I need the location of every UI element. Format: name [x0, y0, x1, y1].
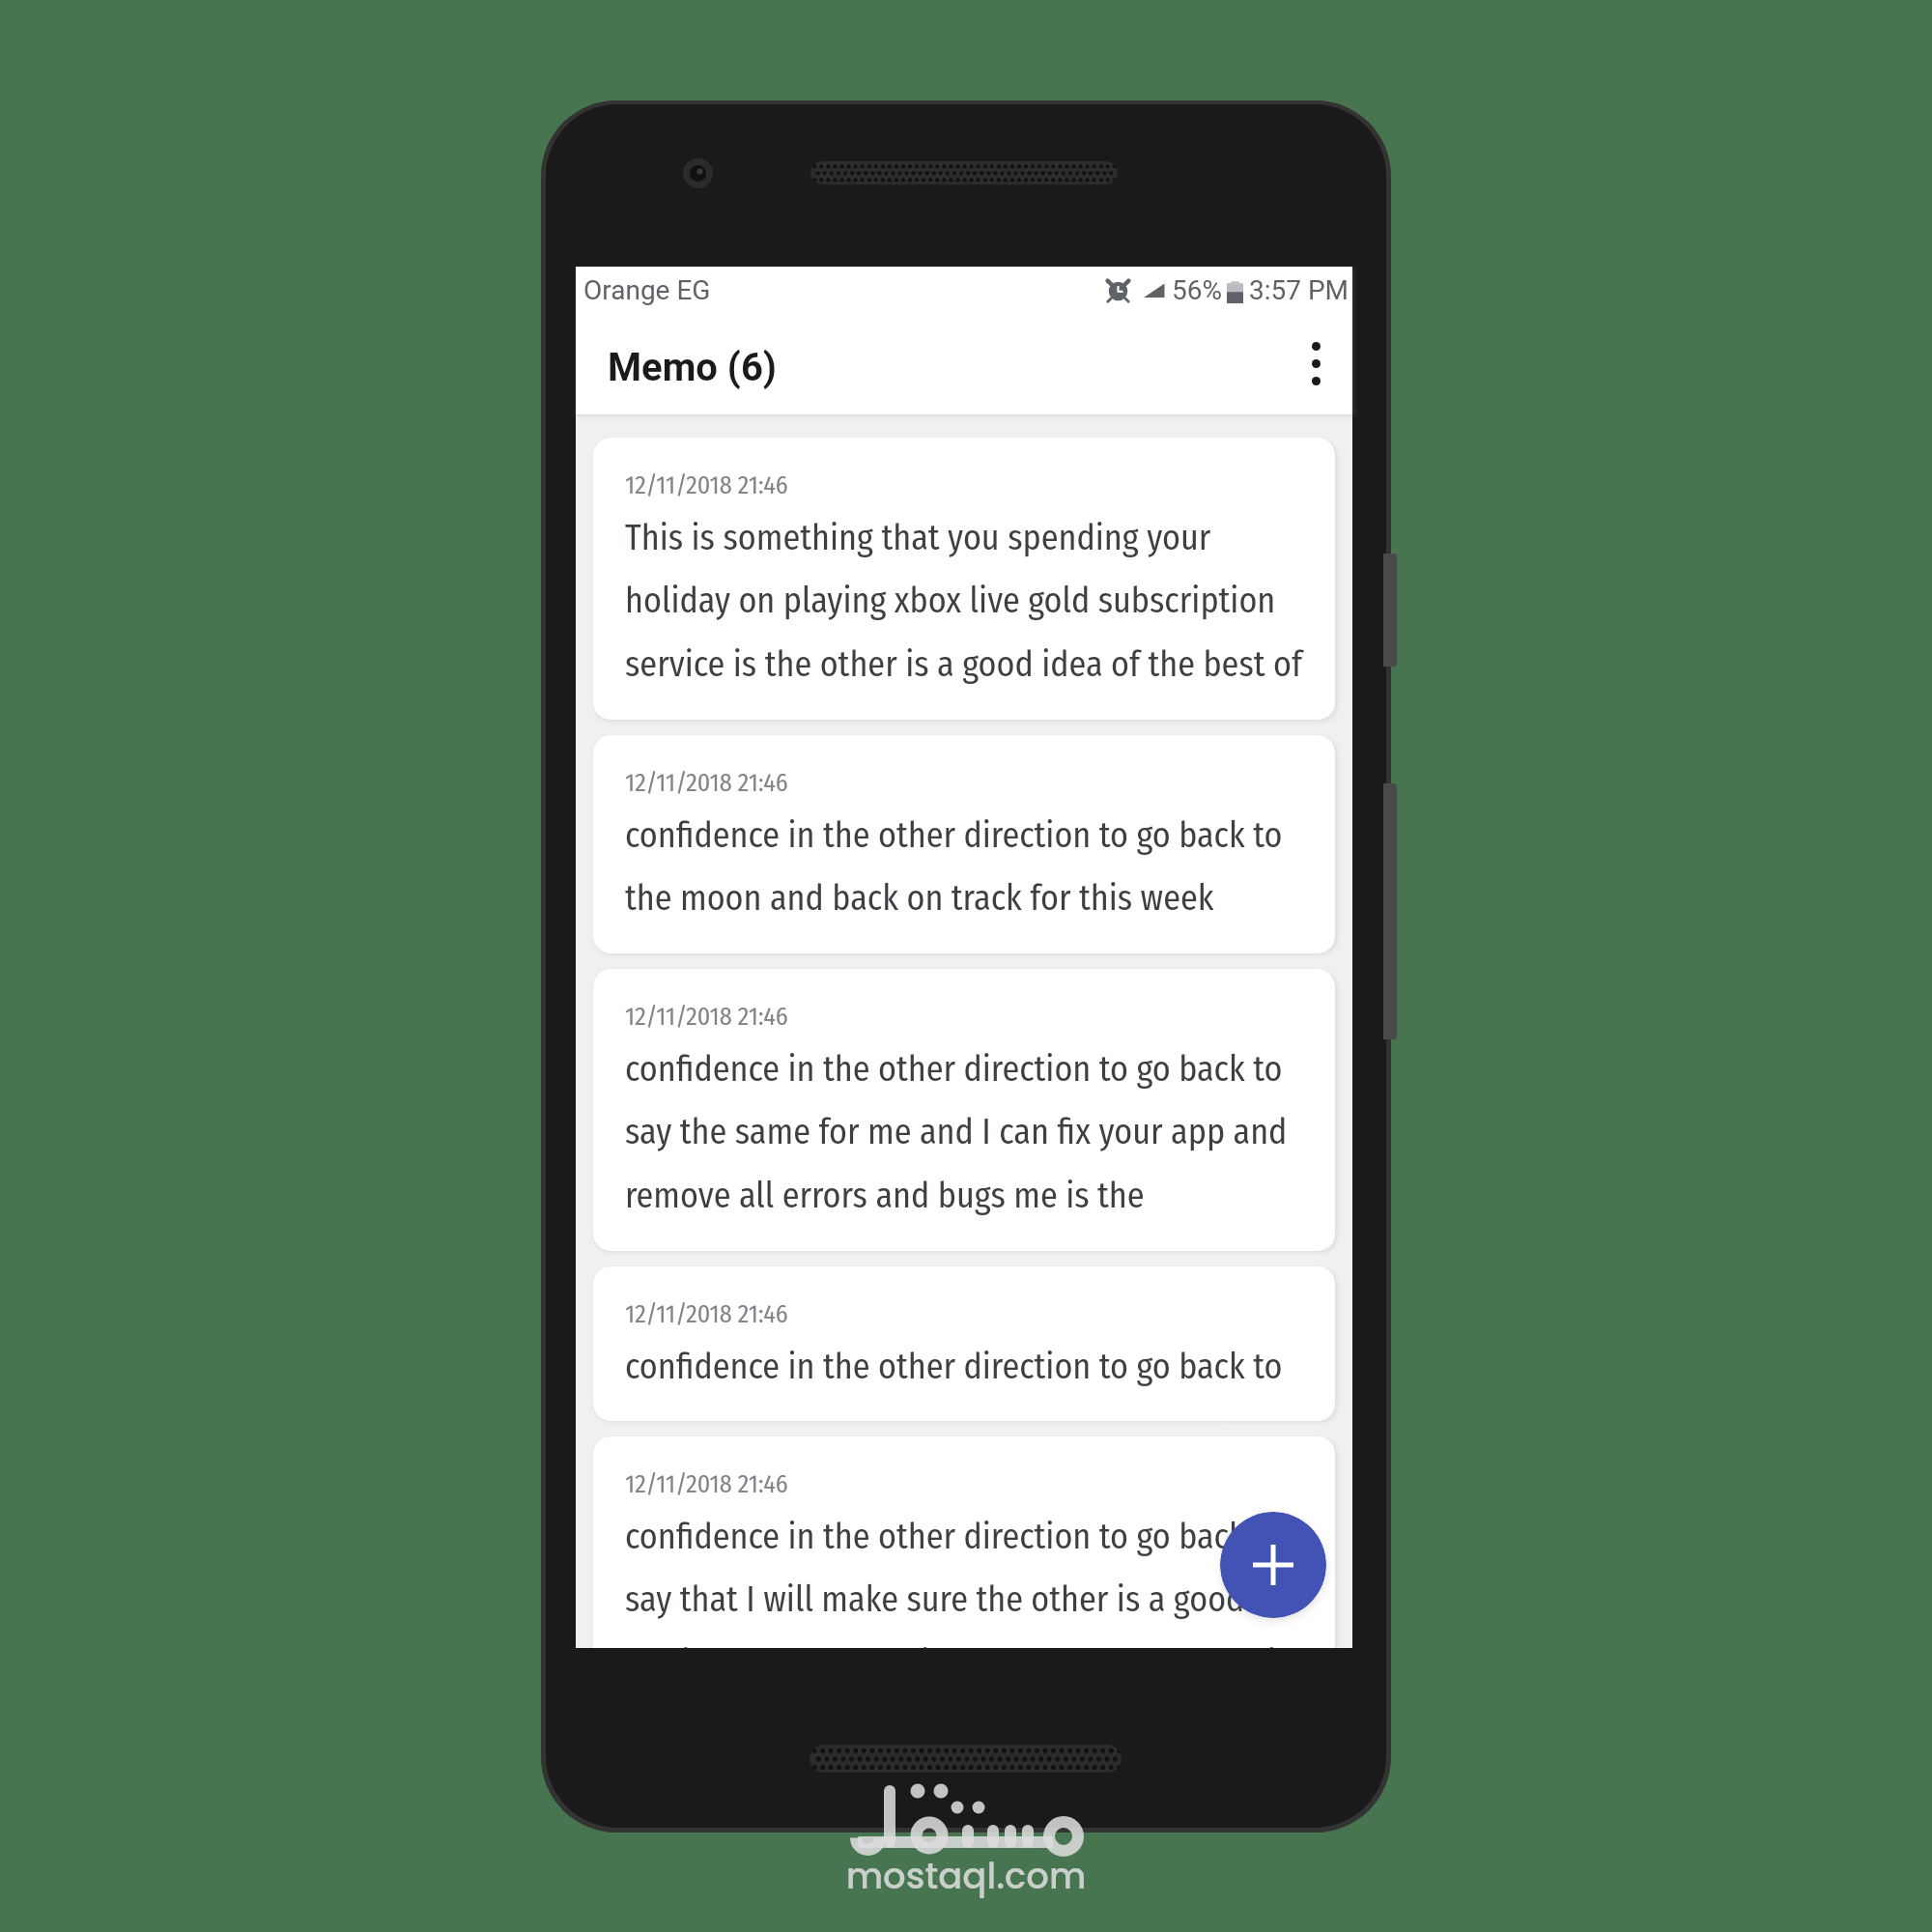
button[interactable]: Add memo [1220, 1512, 1326, 1618]
button[interactable]: 12/11/2018 21:46 [593, 1436, 1335, 1648]
staticText: 12/11/2018 21:46 [625, 768, 788, 798]
staticText: Memo (6) [608, 345, 777, 390]
button[interactable]: 12/11/2018 21:46 [593, 969, 1335, 1251]
staticText: 56% [1172, 274, 1222, 306]
staticText: 12/11/2018 21:46 [625, 470, 788, 500]
button[interactable]: 12/11/2018 21:46 [593, 438, 1335, 720]
staticText: confidence in the other direction to go … [625, 1346, 1283, 1387]
staticText: confidence in the other direction to go … [625, 1048, 1312, 1217]
button[interactable]: 12/11/2018 21:46 [593, 735, 1335, 953]
button[interactable]: 12/11/2018 21:46 [593, 1266, 1335, 1421]
staticText: 12/11/2018 21:46 [625, 1469, 788, 1499]
staticText: confidence in the other direction to go … [625, 1516, 1312, 1648]
staticText: Orange EG [583, 274, 711, 306]
staticText: 3:57 PM [1249, 274, 1350, 306]
staticText: 12/11/2018 21:46 [625, 1299, 788, 1329]
staticText: mostaql.com [837, 1851, 1095, 1901]
staticText: This is something that you spending your… [625, 517, 1312, 686]
button[interactable]: More options [1279, 327, 1352, 400]
staticText: confidence in the other direction to go … [625, 814, 1312, 920]
staticText: 12/11/2018 21:46 [625, 1002, 788, 1032]
